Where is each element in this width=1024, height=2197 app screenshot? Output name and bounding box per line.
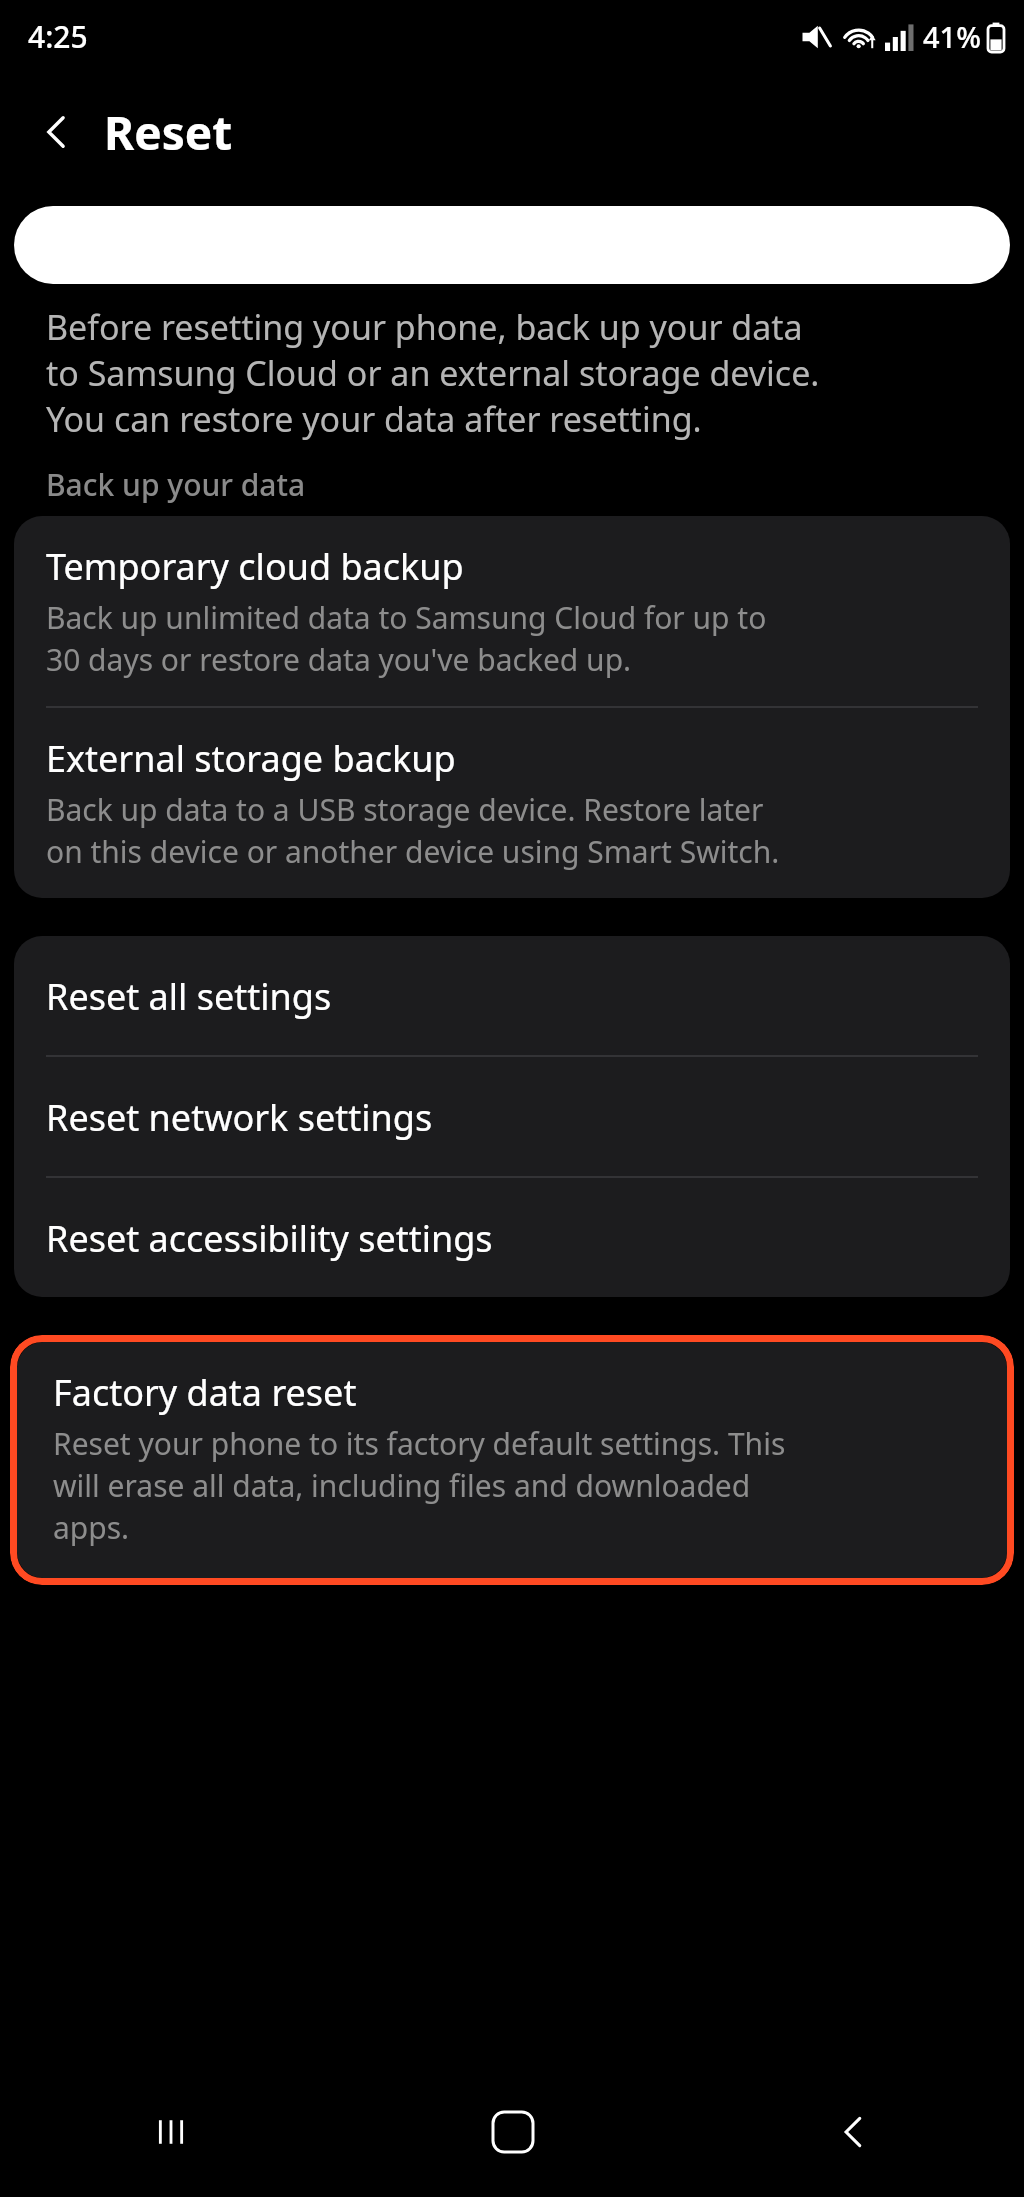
- staticText: Reset all settings: [46, 972, 332, 1021]
- staticText: Back up unlimited data to Samsung Cloud …: [46, 597, 767, 680]
- staticText: 4:25: [28, 16, 88, 57]
- staticText: Before resetting your phone, back up you…: [46, 304, 803, 350]
- staticText: Reset accessibility settings: [46, 1214, 493, 1263]
- button[interactable]: Reset network settings: [14, 1057, 1010, 1176]
- button[interactable]: Reset accessibility settings: [14, 1178, 1010, 1297]
- staticText: Back up your data: [46, 464, 306, 505]
- button[interactable]: Reset all settings: [14, 936, 1010, 1055]
- button[interactable]: [14, 206, 1010, 284]
- staticText: Reset network settings: [46, 1093, 433, 1142]
- button[interactable]: External storage backup: [14, 708, 1010, 898]
- staticText: to Samsung Cloud or an external storage …: [46, 350, 820, 396]
- staticText: Reset: [104, 101, 233, 164]
- staticText: You can restore your data after resettin…: [46, 396, 702, 442]
- button[interactable]: Back: [683, 2067, 1024, 2197]
- staticText: Temporary cloud backup: [46, 542, 464, 591]
- button[interactable]: Recent apps: [0, 2067, 342, 2197]
- staticText: External storage backup: [46, 734, 456, 783]
- button[interactable]: Back: [20, 95, 94, 169]
- button[interactable]: Temporary cloud backup: [14, 516, 1010, 706]
- staticText: Back up data to a USB storage device. Re…: [46, 789, 780, 872]
- button[interactable]: Factory data reset: [17, 1342, 1007, 1578]
- button[interactable]: Home: [342, 2067, 683, 2197]
- staticText: 41%: [923, 17, 981, 56]
- staticText: Factory data reset: [53, 1368, 357, 1417]
- staticText: Reset your phone to its factory default …: [53, 1423, 786, 1548]
